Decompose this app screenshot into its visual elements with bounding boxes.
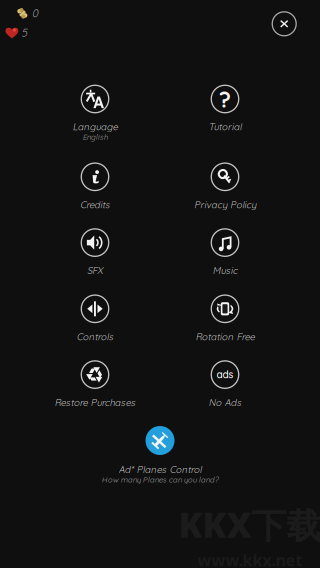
staticText: Language <box>72 121 117 133</box>
button[interactable]: ads <box>160 361 290 408</box>
button[interactable]: Rotation Free <box>160 295 290 342</box>
button[interactable]: Credits <box>30 163 160 210</box>
staticText: ads <box>216 368 233 381</box>
staticText: 0 <box>32 6 38 20</box>
staticText: Rotation Free <box>195 330 254 342</box>
staticText: Ad* Planes Control <box>118 463 201 475</box>
button[interactable]: Close <box>265 5 303 43</box>
staticText: Music <box>212 264 237 276</box>
button[interactable]: Language <box>30 85 160 141</box>
staticText: ? <box>219 85 231 113</box>
staticText: Tutorial <box>208 121 241 133</box>
staticText: KKX下载 <box>178 501 320 547</box>
button[interactable]: Restore Purchases <box>30 361 160 408</box>
button[interactable]: Music <box>160 229 290 276</box>
staticText: How many Planes can you land? <box>101 475 218 484</box>
button[interactable]: Privacy Policy <box>160 163 290 210</box>
button[interactable]: ? <box>160 85 290 132</box>
staticText: Restore Purchases <box>54 396 135 408</box>
staticText: Credits <box>80 198 110 210</box>
staticText: No Ads <box>208 396 241 408</box>
staticText: Controls <box>76 330 113 342</box>
staticText: SFX <box>87 264 103 276</box>
staticText: English <box>82 132 107 142</box>
button[interactable]: Ad* Planes Control <box>55 426 265 484</box>
button[interactable]: Controls <box>30 295 160 342</box>
staticText: www.kkx.net <box>197 549 302 568</box>
button[interactable]: SFX <box>30 229 160 276</box>
staticText: Privacy Policy <box>194 198 256 210</box>
staticText: 5 <box>21 26 27 39</box>
